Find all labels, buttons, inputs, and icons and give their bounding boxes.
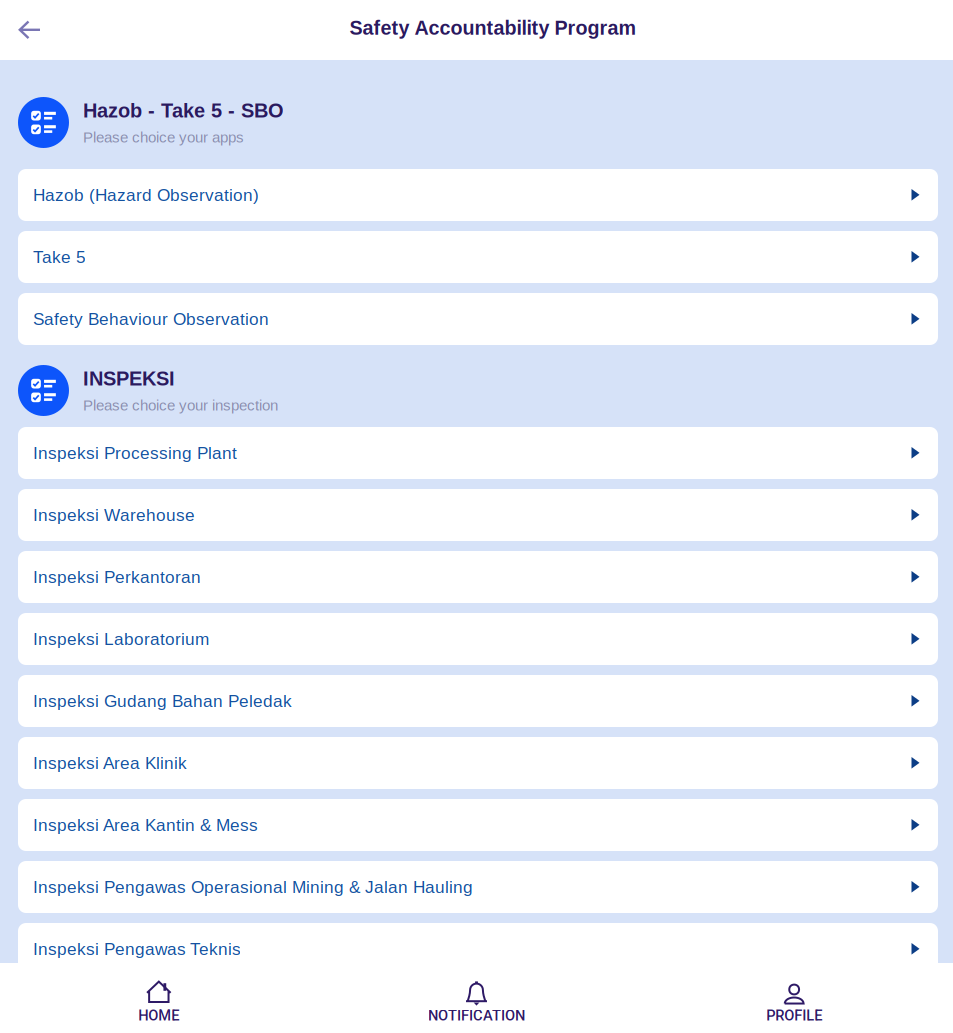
- staticText: Please choice your inspection: [83, 397, 278, 414]
- staticText: Safety Accountability Program: [349, 17, 636, 39]
- button[interactable]: Inspeksi Processing Plant: [18, 427, 938, 479]
- staticText: Inspeksi Area Kantin & Mess: [33, 815, 258, 835]
- button[interactable]: Inspeksi Area Kantin & Mess: [18, 799, 938, 851]
- staticText: Inspeksi Processing Plant: [33, 443, 237, 463]
- button[interactable]: Inspeksi Perkantoran: [18, 551, 938, 603]
- button[interactable]: Inspeksi Area Klinik: [18, 737, 938, 789]
- staticText: Please choice your apps: [83, 129, 244, 146]
- staticText: Inspeksi Perkantoran: [33, 567, 201, 587]
- button[interactable]: NOTIFICATION: [318, 959, 635, 1033]
- button[interactable]: Inspeksi Gudang Bahan Peledak: [18, 675, 938, 727]
- button[interactable]: PROFILE: [635, 959, 953, 1033]
- button[interactable]: Inspeksi Pengawas Operasional Mining & J…: [18, 861, 938, 913]
- staticText: Inspeksi Warehouse: [33, 505, 195, 525]
- staticText: INSPEKSI: [83, 367, 175, 390]
- staticText: Inspeksi Pengawas Teknis: [33, 939, 241, 959]
- staticText: HOME: [138, 1007, 179, 1024]
- staticText: Hazob (Hazard Observation): [33, 185, 259, 205]
- button[interactable]: Hazob (Hazard Observation): [18, 169, 938, 221]
- staticText: Safety Behaviour Observation: [33, 309, 269, 329]
- button[interactable]: HOME: [0, 959, 318, 1033]
- staticText: Inspeksi Area Klinik: [33, 753, 187, 773]
- staticText: PROFILE: [766, 1007, 822, 1024]
- staticText: Take 5: [33, 247, 86, 267]
- button[interactable]: Inspeksi Pengawas Teknis: [18, 923, 938, 975]
- button[interactable]: Safety Behaviour Observation: [18, 293, 938, 345]
- staticText: NOTIFICATION: [428, 1007, 525, 1024]
- staticText: Inspeksi Pengawas Operasional Mining & J…: [33, 877, 473, 897]
- button[interactable]: Back: [0, 6, 55, 54]
- button[interactable]: Inspeksi Laboratorium: [18, 613, 938, 665]
- button[interactable]: Take 5: [18, 231, 938, 283]
- staticText: Inspeksi Laboratorium: [33, 629, 209, 649]
- button[interactable]: Inspeksi Warehouse: [18, 489, 938, 541]
- staticText: Hazob - Take 5 - SBO: [83, 99, 284, 122]
- staticText: Inspeksi Gudang Bahan Peledak: [33, 691, 292, 711]
